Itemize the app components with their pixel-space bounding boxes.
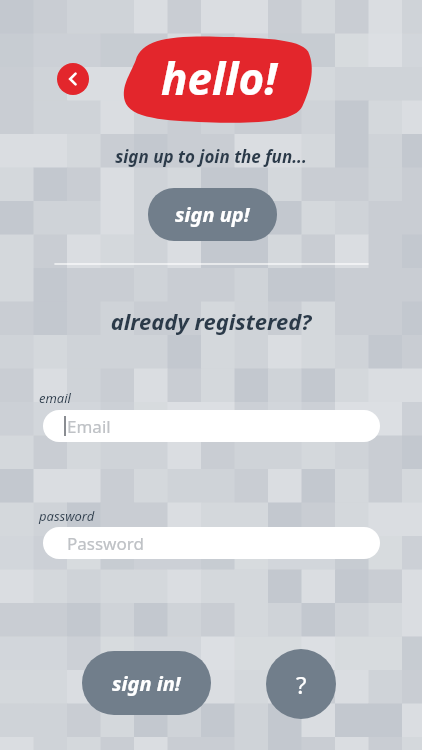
button[interactable]: Help (266, 649, 336, 719)
staticText: password (39, 507, 95, 525)
staticText: already registered? (0, 306, 422, 750)
staticText: sign up! (175, 201, 250, 228)
staticText: Email (67, 415, 111, 438)
staticText: sign in! (112, 670, 181, 697)
staticText: Password (67, 532, 144, 555)
button[interactable]: Password (43, 527, 380, 559)
button[interactable]: sign in! (82, 651, 211, 715)
staticText: email (39, 389, 71, 407)
button[interactable]: sign up! (148, 188, 277, 241)
button[interactable]: Back (57, 63, 89, 95)
staticText: sign up to join the fun... (0, 145, 422, 750)
staticText: ? (296, 668, 307, 701)
staticText: hello! (161, 48, 277, 108)
button[interactable]: Email (43, 410, 380, 442)
